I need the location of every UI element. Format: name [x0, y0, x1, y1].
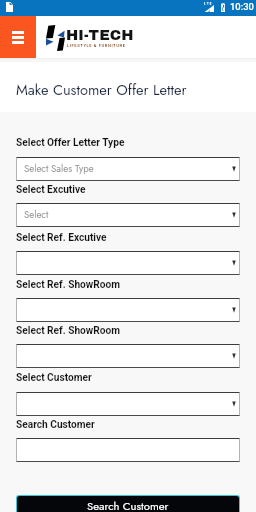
staticText: Select Sales Type [24, 162, 94, 176]
button[interactable] [16, 344, 240, 368]
staticText: Make Customer Offer Letter [16, 79, 187, 100]
staticText: Select Offer Letter Type [16, 137, 125, 149]
button[interactable]: Open navigation menu [0, 16, 36, 58]
button[interactable] [16, 298, 240, 322]
button[interactable] [16, 392, 240, 416]
staticText: HI-TECH [66, 27, 134, 43]
staticText: LIFESTYLE & FURNITURE [67, 43, 126, 48]
staticText: Select Ref. ShowRoom [16, 325, 121, 337]
staticText: Select [24, 208, 49, 222]
button[interactable] [16, 438, 240, 462]
staticText: Select Excutive [16, 184, 86, 196]
button[interactable] [16, 251, 240, 275]
staticText: Select Customer [16, 372, 92, 384]
button[interactable]: Search Customer [17, 496, 239, 512]
staticText: Select Ref. Excutive [16, 232, 107, 244]
button[interactable]: Select [16, 203, 240, 227]
staticText: 10:30 [230, 1, 254, 12]
staticText: Search Customer [87, 498, 169, 512]
button[interactable]: Select Sales Type [16, 157, 240, 181]
staticText: Search Customer [16, 419, 95, 431]
staticText: Select Ref. ShowRoom [16, 279, 121, 291]
